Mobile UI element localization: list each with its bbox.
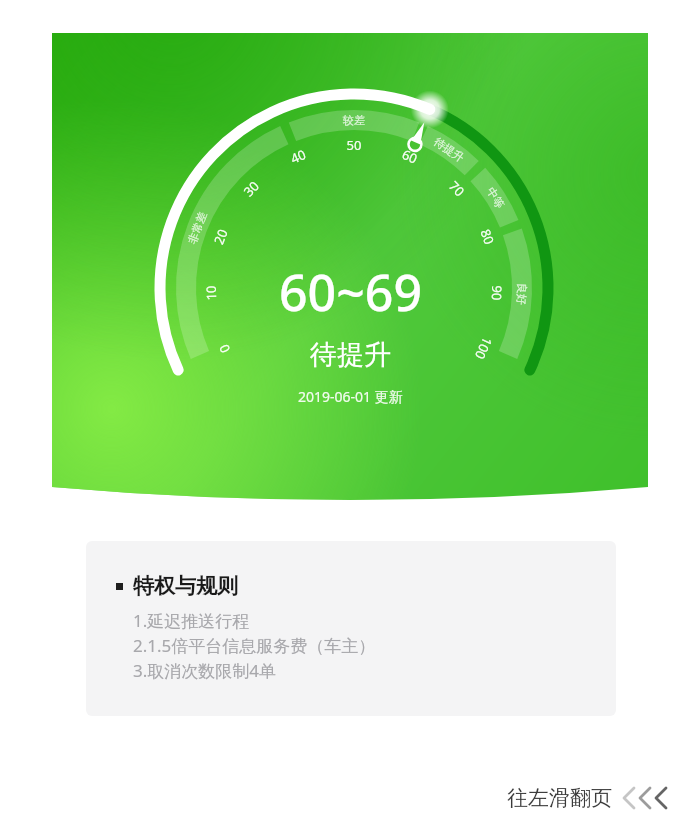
staticText: 1.延迟推送行程 — [133, 609, 250, 632]
button[interactable]: 特权与规则 — [86, 541, 616, 716]
staticText: 2.1.5倍平台信息服务费（车主） — [133, 634, 376, 657]
other: Swipe left for next page — [626, 784, 674, 812]
staticText: 特权与规则 — [133, 573, 238, 599]
staticText: 2019-06-01 更新 — [298, 387, 403, 406]
staticText: 待提升 — [310, 338, 391, 372]
staticText: 60~69 — [279, 258, 422, 326]
staticText: 往左滑翻页 — [507, 785, 612, 811]
button[interactable] — [52, 33, 648, 503]
staticText: 3.取消次数限制4单 — [133, 659, 277, 682]
button[interactable]: 往左滑翻页 — [507, 784, 674, 812]
